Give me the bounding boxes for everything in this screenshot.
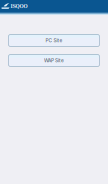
- button[interactable]: WAP Site: [8, 54, 100, 67]
- staticText: ISQOO: [10, 3, 27, 9]
- staticText: WAP Site: [44, 58, 64, 63]
- button[interactable]: PC Site: [8, 34, 100, 47]
- staticText: PC Site: [45, 38, 62, 43]
